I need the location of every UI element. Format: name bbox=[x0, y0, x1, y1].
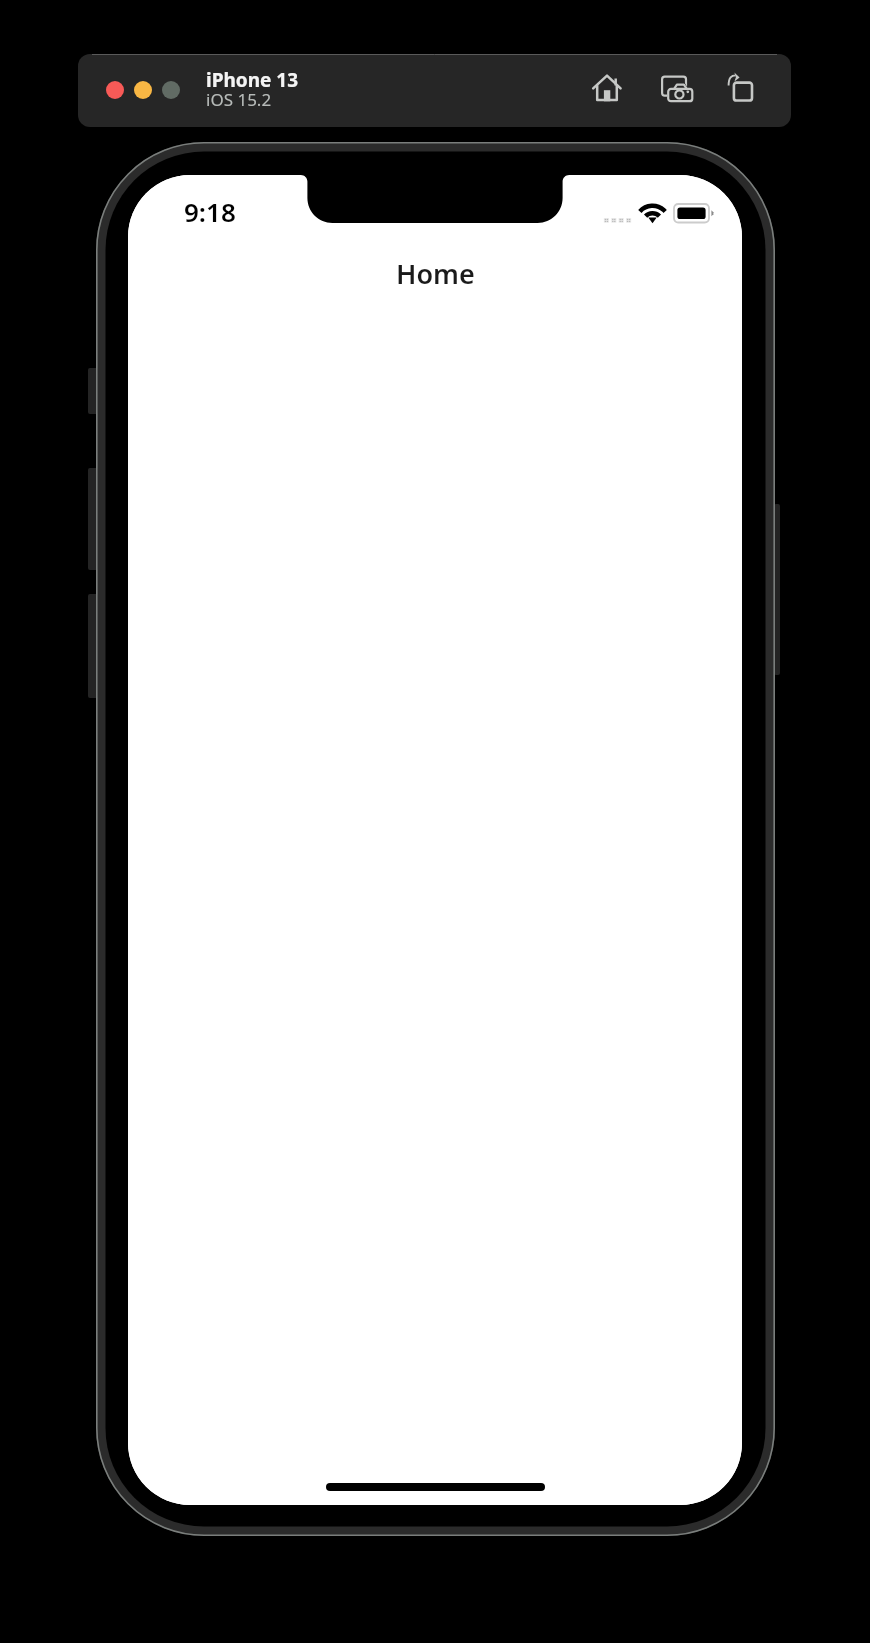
button[interactable]: Home bbox=[589, 71, 625, 107]
button[interactable]: Maximise bbox=[162, 81, 180, 99]
button[interactable]: Close bbox=[106, 81, 124, 99]
staticText: 9:18 bbox=[184, 194, 236, 229]
staticText: Home bbox=[396, 255, 475, 292]
staticText: iPhone 13 bbox=[206, 67, 299, 93]
button[interactable]: Minimise bbox=[134, 81, 152, 99]
staticText: iOS 15.2 bbox=[206, 88, 272, 111]
button[interactable]: Rotate bbox=[725, 71, 761, 107]
button[interactable]: Screenshot bbox=[659, 71, 695, 107]
